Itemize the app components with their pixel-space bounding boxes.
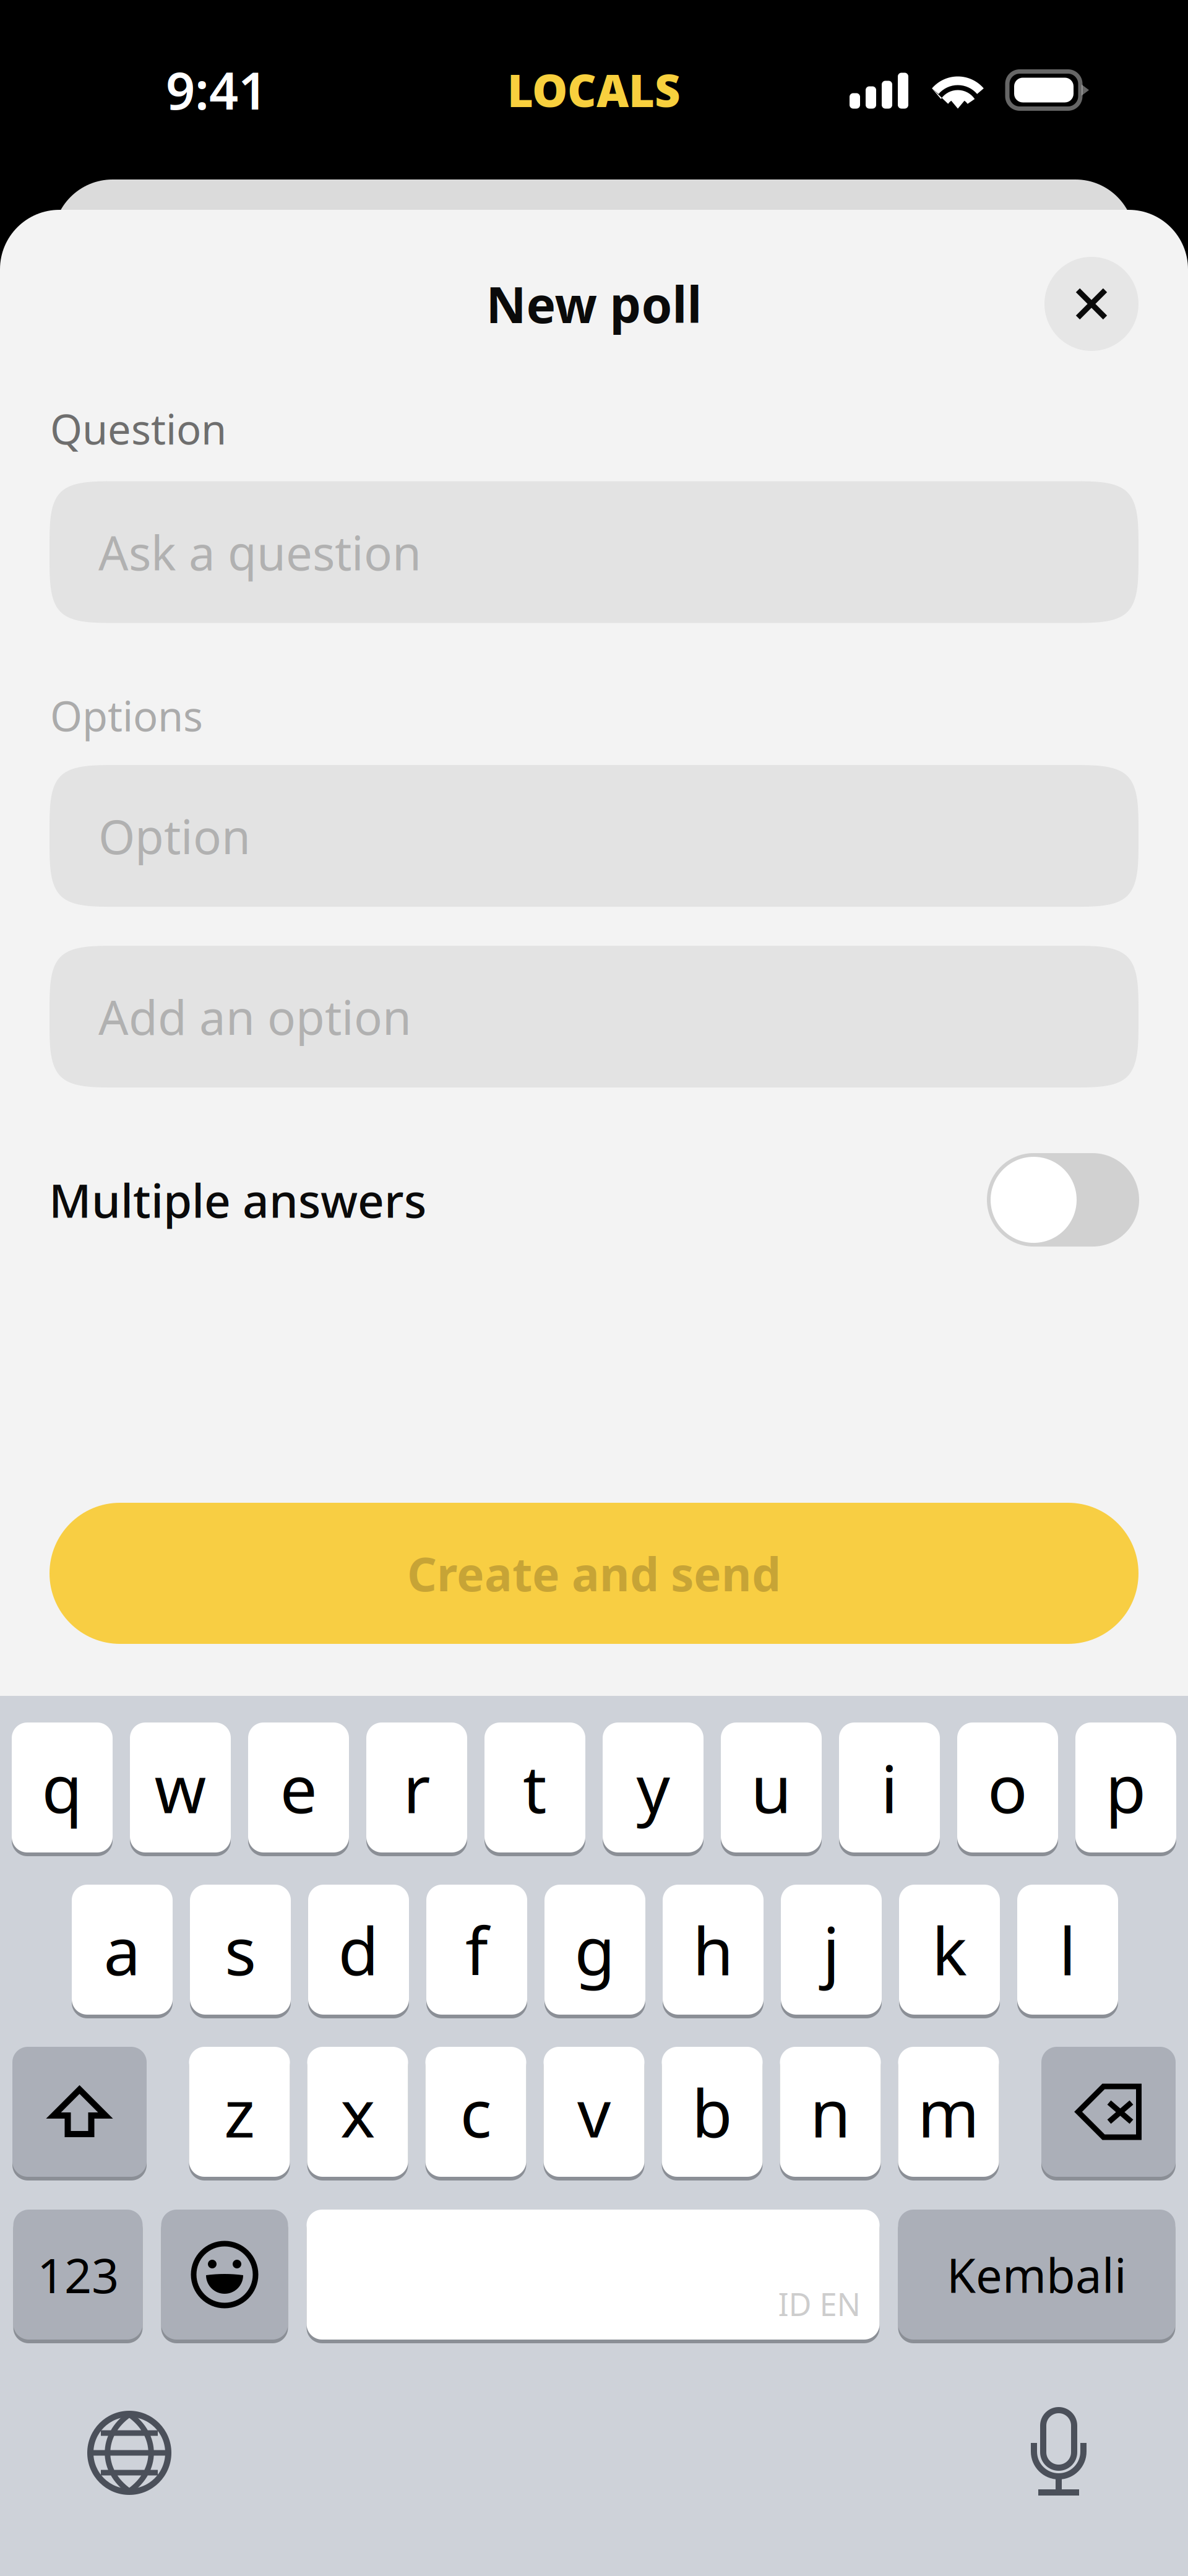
button[interactable]: Ask a question — [49, 481, 1138, 623]
staticText: k — [932, 1906, 967, 1993]
staticText: w — [154, 1744, 206, 1831]
button[interactable]: n — [780, 2045, 881, 2179]
staticText: ID EN — [778, 2283, 861, 2325]
staticText: Create and send — [407, 1543, 781, 1604]
button[interactable]: r — [366, 1721, 467, 1854]
button[interactable]: q — [12, 1721, 113, 1854]
staticText: LOCALS — [507, 60, 681, 119]
staticText: Kembali — [947, 2243, 1127, 2306]
button[interactable]: Shift — [12, 2045, 147, 2179]
button[interactable]: y — [603, 1721, 704, 1854]
button[interactable]: Option — [49, 765, 1138, 907]
button[interactable]: 123 — [13, 2208, 143, 2341]
staticText: l — [1059, 1906, 1076, 1993]
staticText: i — [881, 1744, 898, 1831]
staticText: e — [280, 1744, 317, 1831]
button[interactable]: z — [189, 2045, 290, 2179]
button[interactable]: p — [1075, 1721, 1176, 1854]
staticText: Question — [50, 401, 226, 456]
button[interactable]: w — [130, 1721, 231, 1854]
staticText: Ask a question — [98, 521, 421, 583]
staticText: a — [104, 1906, 141, 1993]
button[interactable]: v — [544, 2045, 644, 2179]
staticText: z — [224, 2068, 255, 2156]
button[interactable]: b — [662, 2045, 763, 2179]
button[interactable]: g — [544, 1883, 645, 2016]
staticText: Multiple answers — [49, 1169, 426, 1231]
button[interactable]: k — [899, 1883, 1000, 2016]
staticText: Add an option — [98, 985, 411, 1048]
staticText: New poll — [486, 271, 702, 337]
staticText: Options — [50, 688, 203, 743]
staticText: j — [823, 1906, 840, 1993]
button[interactable]: Delete — [1041, 2045, 1176, 2179]
staticText: t — [523, 1744, 547, 1831]
button[interactable]: Close — [1044, 257, 1138, 351]
button[interactable]: c — [425, 2045, 526, 2179]
staticText: h — [693, 1906, 734, 1993]
button[interactable]: Kembali — [898, 2208, 1175, 2341]
button[interactable]: m — [898, 2045, 999, 2179]
button[interactable]: e — [248, 1721, 349, 1854]
button[interactable]: a — [72, 1883, 173, 2016]
button[interactable]: l — [1017, 1883, 1118, 2016]
button[interactable]: t — [484, 1721, 585, 1854]
button[interactable]: Create and send — [0, 1503, 1188, 1644]
button[interactable]: i — [839, 1721, 940, 1854]
staticText: g — [575, 1906, 615, 1993]
staticText: r — [403, 1744, 430, 1831]
button[interactable]: Emoji — [161, 2208, 288, 2341]
button[interactable]: x — [307, 2045, 408, 2179]
staticText: Option — [98, 805, 251, 867]
staticText: x — [340, 2068, 375, 2156]
staticText: 9:41 — [166, 56, 267, 124]
button[interactable]: Space — [307, 2208, 880, 2341]
button[interactable]: o — [957, 1721, 1058, 1854]
staticText: f — [465, 1906, 488, 1993]
staticText: s — [225, 1906, 256, 1993]
staticText: 123 — [37, 2243, 119, 2306]
button[interactable]: s — [190, 1883, 291, 2016]
staticText: q — [42, 1744, 83, 1831]
staticText: n — [810, 2068, 851, 2156]
button[interactable]: Switch keyboard — [86, 2410, 173, 2496]
staticText: u — [751, 1744, 792, 1831]
staticText: y — [636, 1744, 670, 1831]
staticText: p — [1105, 1744, 1146, 1831]
button[interactable]: f — [426, 1883, 527, 2016]
button[interactable]: j — [781, 1883, 882, 2016]
staticText: m — [918, 2068, 979, 2156]
button[interactable]: Dictate — [1031, 2410, 1087, 2496]
button[interactable]: h — [663, 1883, 764, 2016]
staticText: d — [338, 1906, 379, 1993]
button[interactable]: Add an option — [49, 946, 1138, 1088]
button[interactable]: Multiple answers — [987, 1153, 1139, 1247]
button[interactable]: u — [721, 1721, 822, 1854]
staticText: o — [988, 1744, 1028, 1831]
button[interactable]: d — [308, 1883, 409, 2016]
staticText: b — [692, 2068, 733, 2156]
staticText: c — [460, 2068, 492, 2156]
staticText: v — [577, 2068, 611, 2156]
